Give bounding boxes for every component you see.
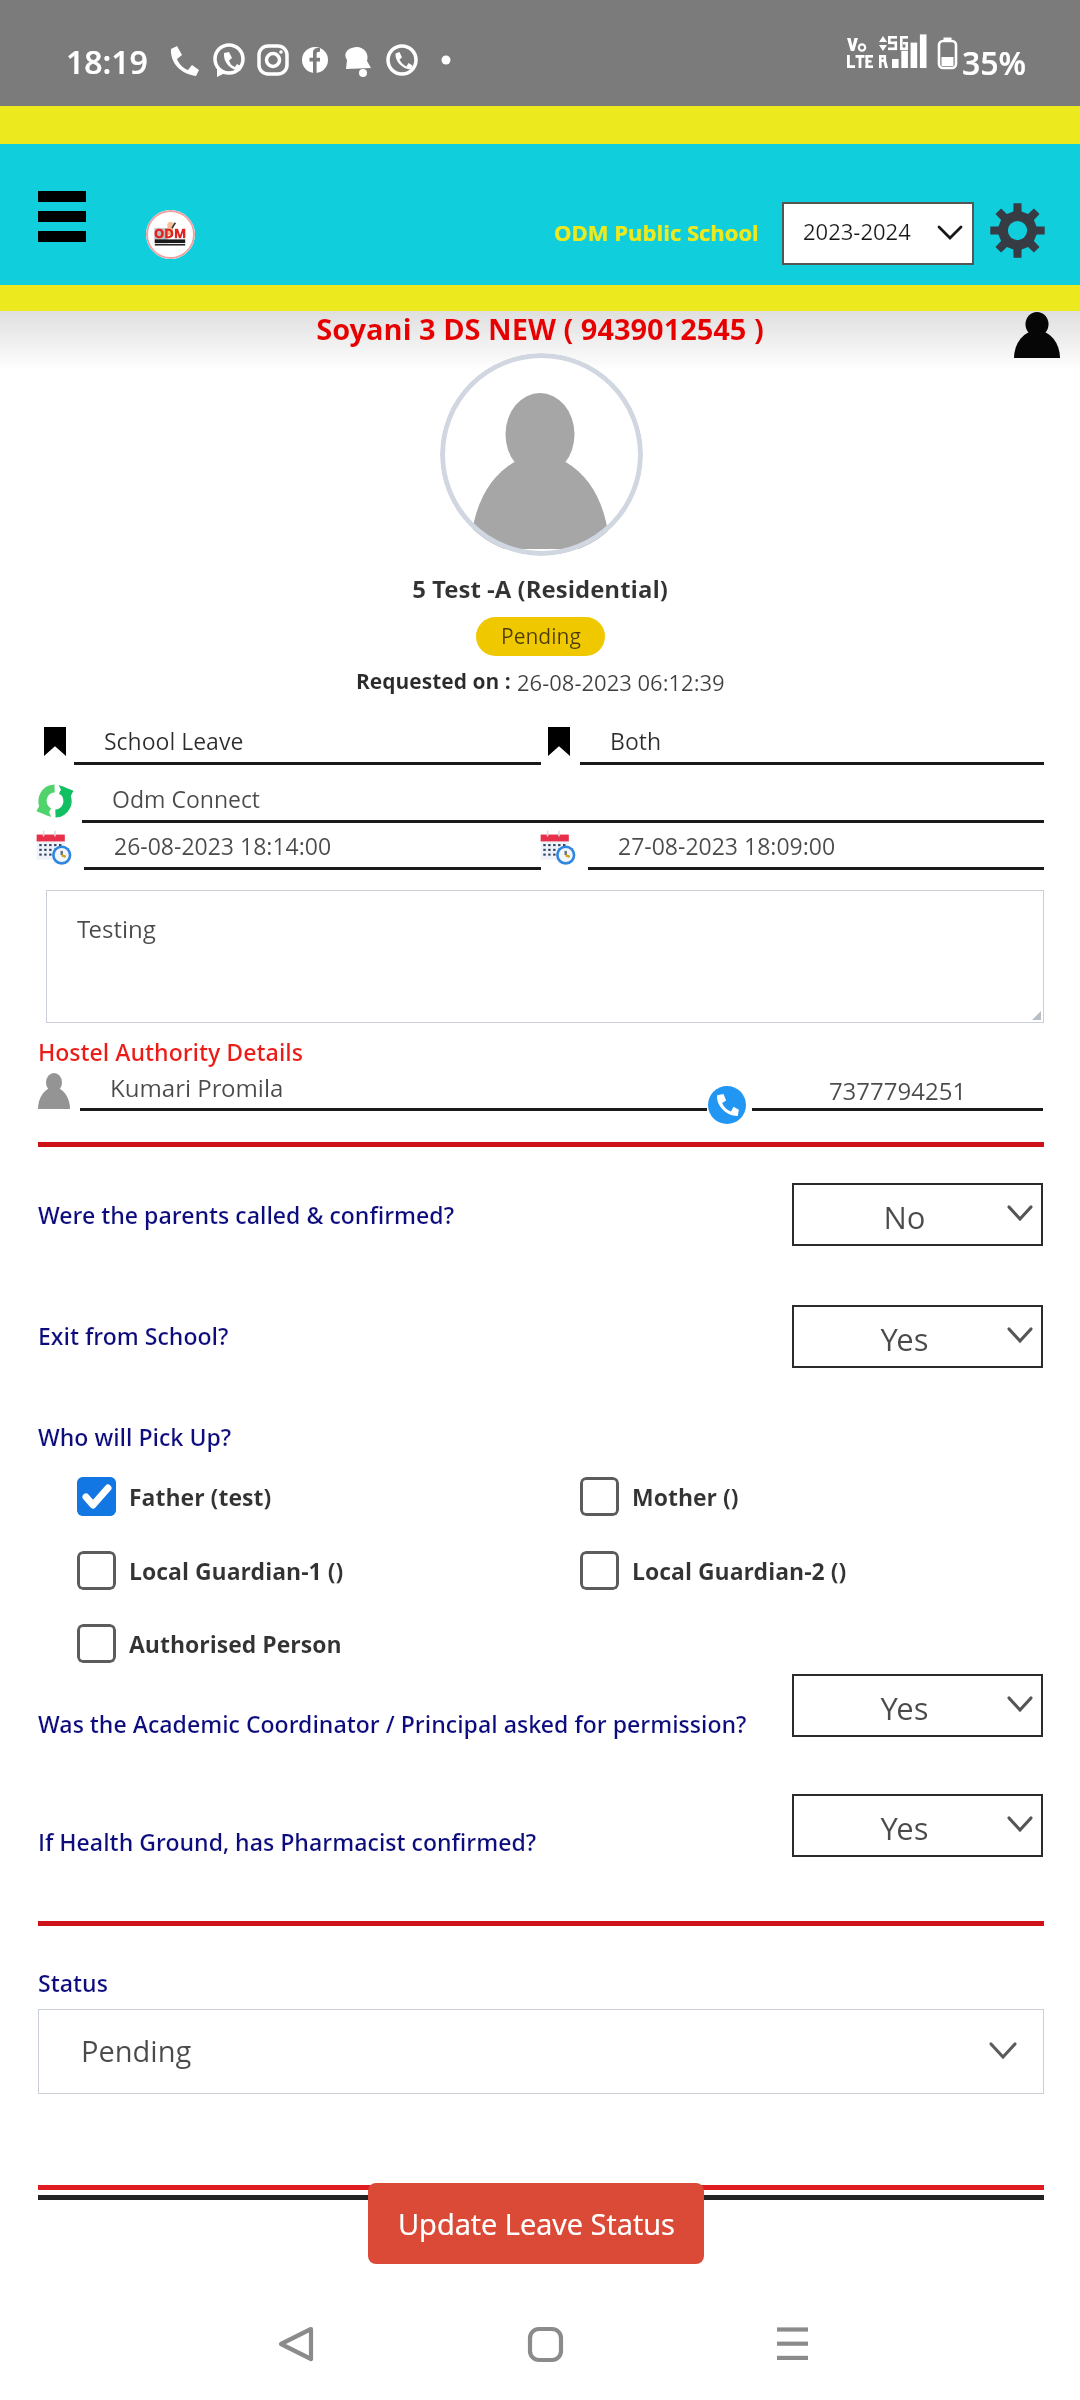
staticText: Authorised Person: [129, 1628, 342, 1659]
staticText: 18:19: [66, 40, 148, 84]
staticText: Yes: [792, 1687, 1017, 1729]
staticText: If Health Ground, has Pharmacist confirm…: [38, 1826, 783, 1857]
button[interactable]: Call: [708, 1086, 746, 1124]
staticText: Local Guardian-2 (): [632, 1555, 847, 1586]
button[interactable]: Back: [266, 2314, 326, 2374]
button[interactable]: Local Guardian-1 (): [77, 1551, 344, 1590]
button[interactable]: Home: [515, 2314, 575, 2374]
staticText: School Leave: [104, 725, 244, 756]
button[interactable]: Testing: [46, 890, 1044, 1023]
staticText: Were the parents called & confirmed?: [38, 1199, 783, 1230]
button[interactable]: No: [792, 1183, 1043, 1246]
button[interactable]: Pending: [476, 617, 605, 656]
staticText: Father (test): [129, 1481, 272, 1512]
staticText: 26-08-2023 18:14:00: [114, 830, 332, 861]
staticText: Yes: [792, 1807, 1017, 1849]
staticText: 26-08-2023 06:12:39: [517, 667, 725, 697]
button[interactable]: Mother (): [580, 1477, 739, 1516]
staticText: Exit from School?: [38, 1320, 783, 1351]
button[interactable]: Father (test): [77, 1477, 272, 1516]
staticText: Mother (): [632, 1481, 739, 1512]
button[interactable]: Update Leave Status: [368, 2183, 704, 2264]
staticText: Yes: [792, 1318, 1017, 1360]
button[interactable]: Yes: [792, 1794, 1043, 1857]
staticText: 2023-2024: [803, 216, 911, 246]
staticText: ODM: [154, 224, 187, 242]
button[interactable]: 2023-2024: [782, 202, 974, 265]
staticText: Pending: [501, 622, 581, 651]
button[interactable]: Local Guardian-2 (): [580, 1551, 847, 1590]
staticText: Soyani 3 DS NEW ( 9439012545 ): [0, 309, 1080, 348]
staticText: 5 Test -A (Residential): [0, 572, 1080, 605]
button[interactable]: Authorised Person: [77, 1624, 342, 1663]
staticText: ODM Public School: [554, 217, 759, 247]
staticText: 7377794251: [752, 1074, 1043, 1107]
staticText: Odm Connect: [112, 783, 260, 814]
staticText: Requested on :: [356, 667, 517, 696]
button[interactable]: Yes: [792, 1674, 1043, 1737]
button[interactable]: Account: [1014, 312, 1060, 358]
button[interactable]: Recent apps: [762, 2314, 822, 2374]
button[interactable]: School logo: [146, 210, 195, 259]
button[interactable]: Yes: [792, 1305, 1043, 1368]
staticText: Both: [610, 725, 662, 756]
button[interactable]: Pending: [38, 2009, 1044, 2094]
staticText: Testing: [77, 912, 156, 945]
staticText: Was the Academic Coordinator / Principal…: [38, 1708, 783, 1739]
button[interactable]: Settings: [990, 203, 1045, 258]
staticText: Who will Pick Up?: [38, 1421, 232, 1452]
staticText: Kumari Promila: [110, 1071, 284, 1104]
staticText: 27-08-2023 18:09:00: [618, 830, 836, 861]
staticText: Status: [38, 1967, 108, 1998]
staticText: Local Guardian-1 (): [129, 1555, 344, 1586]
staticText: Pending: [81, 2031, 192, 2070]
staticText: No: [792, 1196, 1017, 1238]
staticText: Update Leave Status: [398, 2204, 675, 2243]
staticText: Hostel Authority Details: [38, 1036, 303, 1067]
staticText: 35%: [962, 41, 1027, 85]
button[interactable]: Menu: [38, 188, 86, 240]
